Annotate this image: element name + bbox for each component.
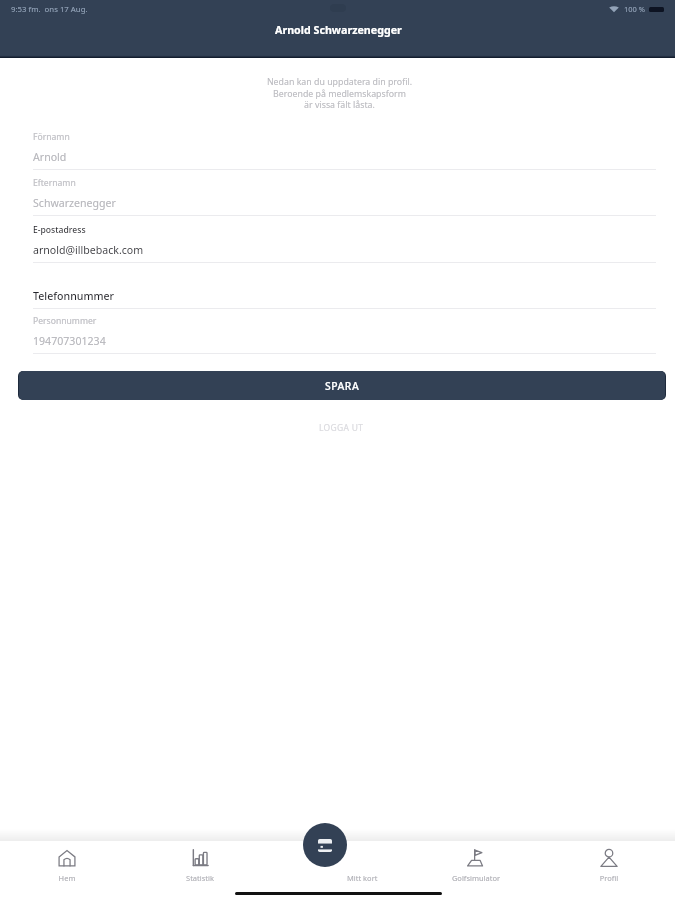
button[interactable]: Telefonnummer	[0, 263, 675, 309]
button[interactable]: Efternamn	[0, 170, 675, 216]
staticText: SPARA	[325, 379, 360, 393]
staticText: Schwarzenegger	[33, 196, 116, 210]
staticText: E-postadress	[33, 224, 86, 236]
staticText: Profil	[569, 873, 649, 883]
staticText: Personnummer	[33, 315, 97, 327]
staticText: Arnold Schwarzenegger	[275, 23, 402, 38]
button[interactable]	[173, 841, 227, 900]
staticText: Golfsimulator	[436, 873, 516, 883]
button[interactable]: Mitt kort	[335, 841, 389, 900]
staticText: Hem	[27, 873, 107, 883]
button[interactable]: Personnummer	[0, 308, 675, 354]
staticText: LOGGA UT	[319, 422, 364, 434]
button[interactable]: E-postadress	[0, 217, 675, 263]
staticText: Mitt kort	[347, 873, 378, 883]
button[interactable]	[582, 841, 636, 900]
button[interactable]: Förnamn	[0, 124, 675, 170]
button[interactable]: SPARA	[19, 371, 665, 400]
staticText: Statistik	[160, 873, 240, 883]
staticText: arnold@illbeback.com	[33, 243, 144, 257]
staticText: 100 %	[624, 4, 646, 14]
button[interactable]: Mitt kort	[303, 823, 347, 867]
button[interactable]	[448, 841, 502, 900]
staticText: Arnold	[33, 150, 67, 164]
button[interactable]	[40, 841, 94, 900]
staticText: Telefonnummer	[33, 289, 115, 303]
staticText: Efternamn	[33, 177, 76, 189]
staticText: Nedan kan du uppdatera din profil. Beroe…	[2, 76, 675, 111]
staticText: 194707301234	[33, 334, 106, 348]
staticText: Förnamn	[33, 131, 70, 143]
staticText: 9:53 fm. ons 17 Aug.	[11, 4, 88, 15]
